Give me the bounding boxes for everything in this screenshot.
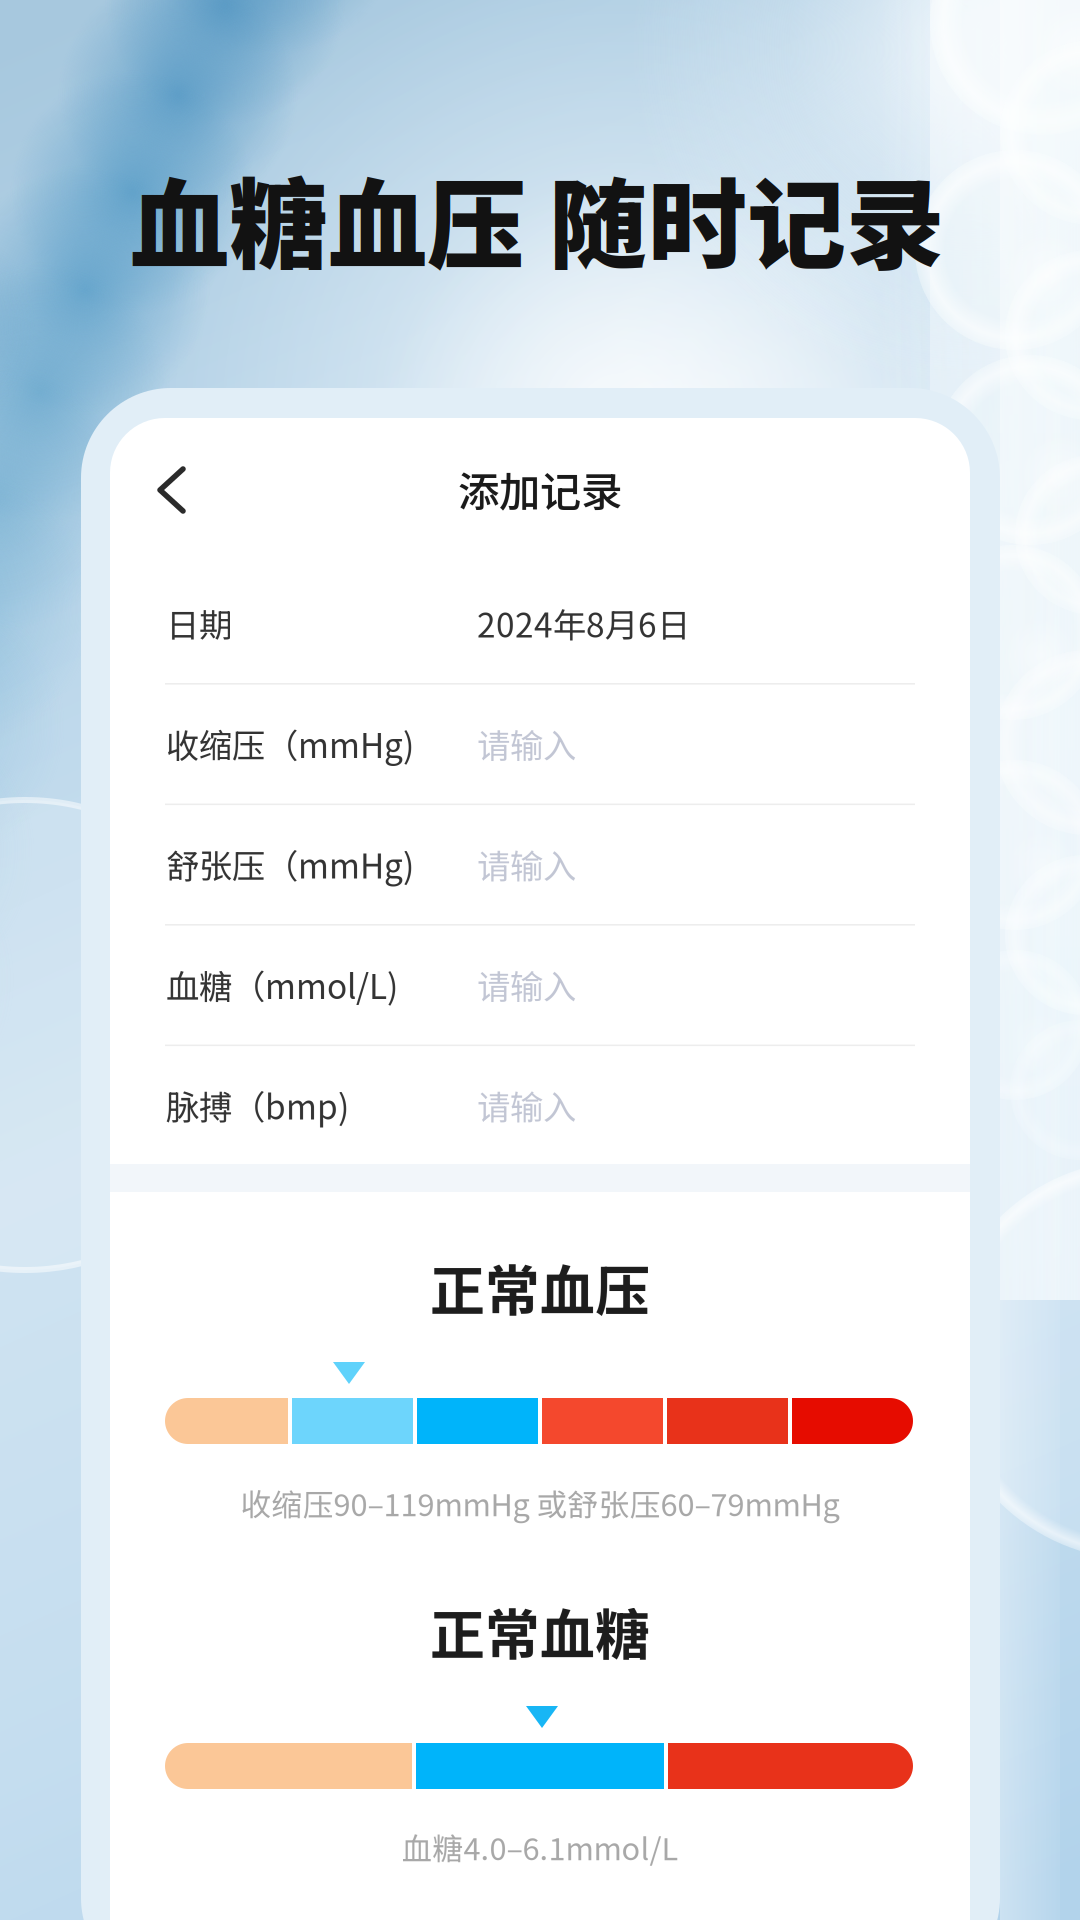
staticText: 舒张压（mmHg) xyxy=(166,840,414,888)
button[interactable]: 血糖（mmol/L) xyxy=(110,924,970,1044)
staticText: 日期 xyxy=(166,599,232,647)
button[interactable]: 舒张压（mmHg) xyxy=(110,804,970,924)
staticText: 2024年8月6日 xyxy=(477,599,690,647)
staticText: 添加记录 xyxy=(458,459,622,519)
staticText: 收缩压（mmHg) xyxy=(166,719,414,768)
staticText: 请输入 xyxy=(477,840,576,888)
button[interactable]: Back xyxy=(160,434,270,546)
button[interactable]: 收缩压（mmHg) xyxy=(110,683,970,803)
button[interactable]: 脉搏（bmp) xyxy=(110,1045,970,1165)
staticText: 脉搏（bmp) xyxy=(166,1081,349,1129)
staticText: 血糖血压 随时记录 xyxy=(130,147,945,289)
staticText: 正常血压 xyxy=(430,1247,650,1327)
staticText: 正常血糖 xyxy=(430,1591,650,1671)
staticText: 血糖（mmol/L) xyxy=(166,960,398,1009)
staticText: 请输入 xyxy=(477,960,576,1009)
staticText: 请输入 xyxy=(477,1081,576,1129)
staticText: 血糖4.0–6.1mmol/L xyxy=(401,1825,678,1869)
staticText: 收缩压90–119mmHg 或舒张压60–79mmHg xyxy=(240,1481,839,1525)
staticText: 请输入 xyxy=(477,719,576,768)
button[interactable]: 日期 xyxy=(110,563,970,683)
